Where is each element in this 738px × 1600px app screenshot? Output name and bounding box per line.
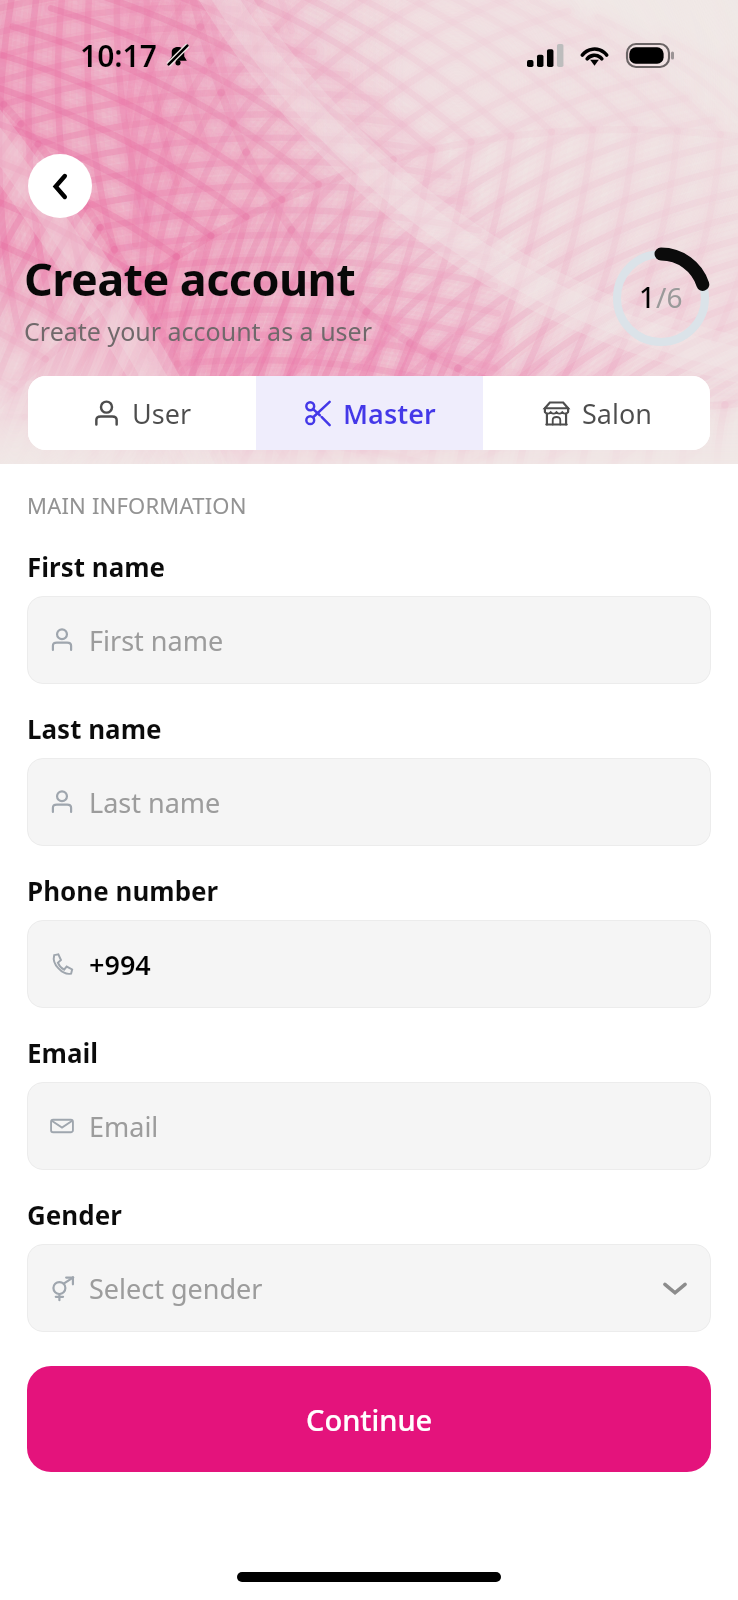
staticText: Last name: [89, 784, 221, 821]
button[interactable]: +994: [27, 920, 711, 1008]
staticText: First name: [27, 549, 166, 584]
button[interactable]: Select gender: [27, 1244, 711, 1332]
staticText: /6: [656, 278, 683, 316]
staticText: Create your account as a user: [24, 314, 372, 348]
staticText: Email: [89, 1108, 159, 1145]
staticText: Select gender: [89, 1270, 263, 1307]
button[interactable]: User: [28, 376, 256, 450]
staticText: First name: [89, 622, 224, 659]
staticText: Continue: [306, 1400, 433, 1439]
staticText: Salon: [582, 395, 652, 432]
staticText: Phone number: [27, 873, 219, 908]
staticText: User: [132, 395, 192, 432]
button[interactable]: Last name: [27, 758, 711, 846]
button[interactable]: First name: [27, 596, 711, 684]
staticText: MAIN INFORMATION: [27, 490, 247, 520]
staticText: Email: [27, 1035, 99, 1070]
button[interactable]: Salon: [483, 376, 710, 450]
button[interactable]: Continue: [27, 1366, 711, 1472]
button[interactable]: Email: [27, 1082, 711, 1170]
button[interactable]: Master: [256, 376, 483, 450]
staticText: +994: [89, 946, 151, 983]
staticText: 10:17: [80, 35, 157, 76]
staticText: Create account: [24, 248, 356, 309]
button[interactable]: Back: [28, 154, 92, 218]
staticText: Last name: [27, 711, 162, 746]
staticText: 1: [639, 278, 656, 316]
staticText: Gender: [27, 1197, 122, 1232]
staticText: Master: [343, 395, 436, 432]
